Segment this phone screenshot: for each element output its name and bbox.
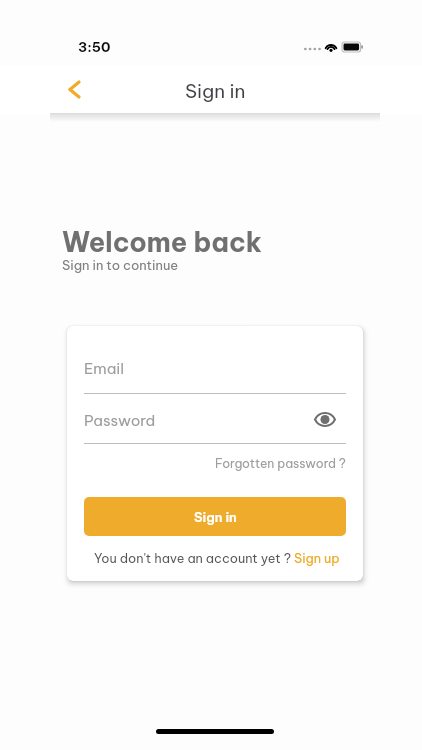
button[interactable]: Show password xyxy=(310,404,340,434)
button[interactable]: Forgotten password ? xyxy=(215,456,346,472)
staticText: Sign in xyxy=(194,509,237,525)
button[interactable]: Sign up xyxy=(294,550,340,566)
button[interactable]: Back xyxy=(56,71,92,107)
staticText: Sign in to continue xyxy=(62,257,179,273)
staticText: Welcome back xyxy=(62,225,262,259)
staticText: You don't have an account yet ? xyxy=(94,550,294,566)
button[interactable]: Password xyxy=(84,411,346,444)
staticText: 3:50 xyxy=(78,38,111,55)
button[interactable]: Email xyxy=(84,359,346,394)
staticText: Email xyxy=(84,359,125,378)
staticText: Password xyxy=(84,411,156,430)
staticText: Sign in xyxy=(185,79,246,103)
button[interactable]: Sign in xyxy=(84,497,346,536)
